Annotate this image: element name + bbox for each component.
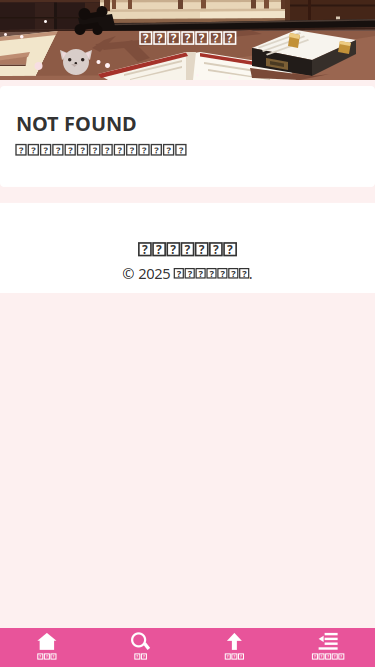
staticText: ? (231, 267, 235, 279)
staticText: ? (340, 654, 342, 659)
staticText: ? (52, 654, 54, 659)
staticText: ? (188, 267, 192, 279)
staticText: ? (154, 144, 158, 156)
button[interactable]: Upload (187, 629, 281, 666)
staticText: ? (19, 144, 23, 156)
staticText: ? (213, 30, 219, 46)
staticText: ? (227, 654, 229, 659)
staticText: ? (334, 654, 336, 659)
staticText: ? (209, 267, 213, 279)
staticText: ? (136, 654, 138, 659)
staticText: ? (130, 144, 134, 156)
staticText: ? (143, 654, 145, 659)
staticText: ? (240, 654, 242, 659)
staticText: ? (68, 144, 72, 156)
staticText: ? (167, 144, 171, 156)
staticText: ? (227, 30, 233, 46)
staticText: ? (233, 654, 235, 659)
staticText: ? (142, 144, 146, 156)
staticText: ? (199, 267, 203, 279)
staticText: ? (156, 241, 162, 257)
staticText: ? (184, 241, 190, 257)
staticText: ? (143, 30, 149, 46)
staticText: ? (171, 30, 177, 46)
staticText: ? (314, 654, 316, 659)
staticText: ? (227, 241, 233, 257)
button[interactable]: Search (94, 629, 188, 666)
staticText: ? (117, 144, 121, 156)
staticText: ? (157, 30, 163, 46)
button[interactable]: Menu (281, 629, 375, 666)
staticText: ? (327, 654, 329, 659)
staticText: . (249, 263, 253, 283)
staticText: ? (242, 267, 246, 279)
staticText: NOT FOUND (16, 110, 137, 137)
staticText: ? (93, 144, 97, 156)
staticText: ? (46, 654, 48, 659)
staticText: ? (185, 30, 191, 46)
staticText: ? (179, 144, 183, 156)
staticText: ? (31, 144, 35, 156)
staticText: ? (170, 241, 176, 257)
staticText: ? (177, 267, 181, 279)
staticText: ? (56, 144, 60, 156)
staticText: ? (105, 144, 109, 156)
staticText: ? (213, 241, 219, 257)
staticText: ? (80, 144, 84, 156)
staticText: ? (39, 654, 41, 659)
staticText: ? (142, 241, 148, 257)
staticText: ? (199, 241, 205, 257)
staticText: ? (220, 267, 224, 279)
staticText: © 2025 (122, 263, 174, 283)
staticText: ? (320, 654, 322, 659)
staticText: ? (199, 30, 205, 46)
button[interactable]: Home (0, 629, 94, 666)
staticText: ? (44, 144, 48, 156)
